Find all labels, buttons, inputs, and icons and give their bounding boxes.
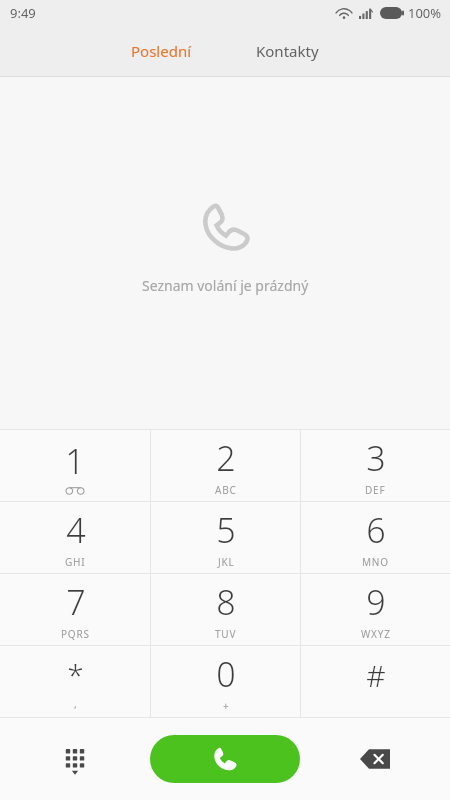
staticText: 6: [366, 507, 386, 553]
button[interactable]: 7: [0, 574, 150, 646]
staticText: 100%: [408, 4, 442, 22]
staticText: 4: [66, 507, 86, 553]
staticText: +: [223, 699, 230, 713]
staticText: PQRS: [61, 627, 90, 641]
staticText: 9: [366, 579, 386, 625]
staticText: 2: [216, 435, 236, 481]
staticText: Kontakty: [256, 41, 319, 61]
button[interactable]: 1: [0, 430, 150, 502]
staticText: 0: [216, 651, 236, 697]
button[interactable]: Call: [150, 735, 300, 783]
staticText: Poslední: [131, 41, 192, 61]
button[interactable]: Poslední: [117, 33, 206, 69]
button[interactable]: Kontakty: [242, 33, 333, 69]
staticText: ABC: [215, 483, 237, 497]
button[interactable]: 0: [151, 646, 300, 718]
staticText: 1: [65, 438, 85, 484]
button[interactable]: 4: [0, 502, 150, 574]
button[interactable]: 6: [301, 502, 450, 574]
staticText: DEF: [365, 483, 386, 497]
button[interactable]: 5: [151, 502, 300, 574]
button[interactable]: Hide keypad: [0, 718, 150, 800]
staticText: MNO: [362, 555, 389, 569]
button[interactable]: 8: [151, 574, 300, 646]
button[interactable]: 3: [301, 430, 450, 502]
staticText: #: [366, 655, 386, 696]
button[interactable]: #: [301, 646, 450, 718]
staticText: 3: [366, 435, 386, 481]
staticText: Seznam volání je prázdný: [142, 276, 309, 295]
staticText: 7: [66, 579, 86, 625]
button[interactable]: 2: [151, 430, 300, 502]
staticText: ,: [74, 697, 78, 711]
staticText: 5: [216, 507, 236, 553]
staticText: GHI: [65, 555, 86, 569]
staticText: TUV: [215, 627, 237, 641]
button[interactable]: *: [0, 646, 150, 718]
staticText: 9:49: [10, 4, 36, 22]
button[interactable]: 9: [301, 574, 450, 646]
staticText: 8: [216, 579, 236, 625]
staticText: *: [67, 654, 84, 695]
button[interactable]: Backspace: [300, 718, 450, 800]
staticText: WXYZ: [361, 627, 391, 641]
staticText: JKL: [218, 555, 235, 569]
